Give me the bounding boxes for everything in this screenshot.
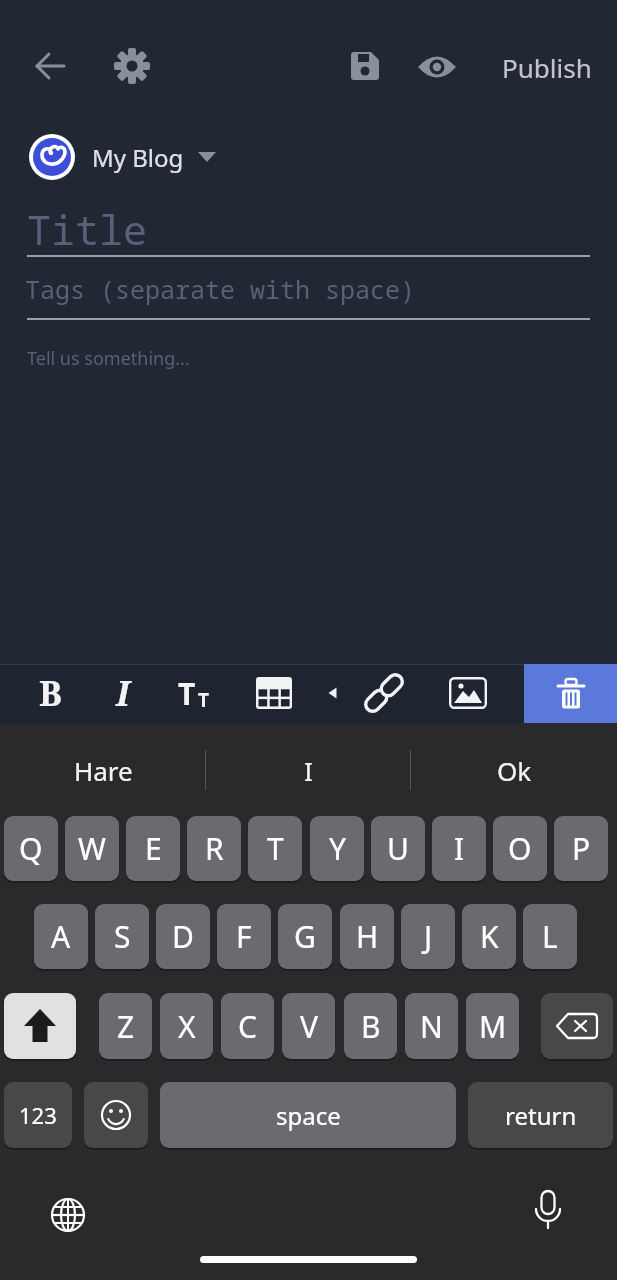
button[interactable] [449,677,487,709]
button[interactable]: I [432,816,486,881]
staticText: N [420,1006,443,1047]
button[interactable]: A [34,904,88,969]
button[interactable]: return [468,1082,613,1148]
button[interactable]: M [466,993,519,1059]
button[interactable] [418,53,456,81]
staticText: Q [19,828,43,869]
staticText: T [178,673,196,714]
staticText: E [145,828,162,869]
staticText: Y [329,828,346,869]
staticText: 123 [19,1100,57,1130]
button[interactable] [256,677,292,709]
staticText: B [361,1006,381,1047]
button[interactable] [113,47,151,85]
staticText: Tags (separate with space) [25,272,416,306]
button[interactable] [351,52,379,80]
button[interactable] [33,49,67,83]
button[interactable] [328,687,338,699]
button[interactable]: K [462,904,516,969]
button[interactable]: T [248,816,302,881]
button[interactable]: P [554,816,608,881]
staticText: R [205,828,224,869]
staticText: C [238,1006,257,1047]
button[interactable] [524,664,617,723]
button[interactable]: B [0,653,200,733]
staticText: Publish [502,50,592,85]
button[interactable]: S [95,904,149,969]
staticText: My Blog [92,141,184,174]
button[interactable]: Ok [364,730,617,810]
button[interactable]: X [160,993,213,1059]
button[interactable] [541,993,613,1059]
staticText: I [116,670,130,716]
button[interactable]: V [282,993,335,1059]
staticText: G [294,916,316,957]
staticText: B [39,670,62,716]
staticText: O [508,828,532,869]
button[interactable]: Z [99,993,152,1059]
staticText: I [454,828,465,869]
button[interactable]: Y [310,816,364,881]
button[interactable]: E [126,816,180,881]
button[interactable]: H [340,904,394,969]
button[interactable]: T [178,672,220,714]
staticText: M [479,1006,507,1047]
staticText: return [505,1099,577,1132]
button[interactable] [361,670,407,716]
button[interactable] [4,993,76,1059]
staticText: Ok [497,753,532,788]
button[interactable]: I [0,653,273,733]
button[interactable]: J [401,904,455,969]
staticText: I [304,753,313,788]
button[interactable]: G [278,904,332,969]
staticText: P [572,828,591,869]
staticText: Title [27,202,147,256]
staticText: W [78,828,106,869]
button[interactable]: R [187,816,241,881]
button[interactable]: Q [4,816,58,881]
staticText: T [267,828,284,869]
staticText: Z [117,1006,135,1047]
button[interactable]: D [156,904,210,969]
button[interactable] [530,1190,566,1236]
staticText: T [198,687,209,713]
button[interactable]: W [65,816,119,881]
staticText: V [300,1006,318,1047]
staticText: S [114,916,131,957]
button[interactable] [25,130,225,185]
button[interactable]: 123 [4,1082,72,1148]
button[interactable]: B [344,993,397,1059]
button[interactable]: space [160,1082,456,1148]
staticText: L [542,916,558,957]
button[interactable]: C [221,993,274,1059]
button[interactable]: I [158,730,458,810]
staticText: Tell us something... [27,346,190,371]
button[interactable]: F [217,904,271,969]
staticText: space [276,1099,341,1132]
button[interactable]: O [493,816,547,881]
button[interactable]: Hare [0,730,253,810]
button[interactable]: L [523,904,577,969]
staticText: F [236,916,252,957]
staticText: U [387,828,409,869]
staticText: K [480,916,499,957]
staticText: Hare [74,753,133,788]
button[interactable]: N [405,993,458,1059]
staticText: H [356,916,379,957]
button[interactable] [49,1196,87,1234]
staticText: A [51,916,71,957]
button[interactable]: U [371,816,425,881]
button[interactable] [84,1082,148,1148]
staticText: X [178,1006,196,1047]
staticText: J [424,916,433,957]
button[interactable]: Publish [397,27,617,107]
staticText: D [172,916,194,957]
